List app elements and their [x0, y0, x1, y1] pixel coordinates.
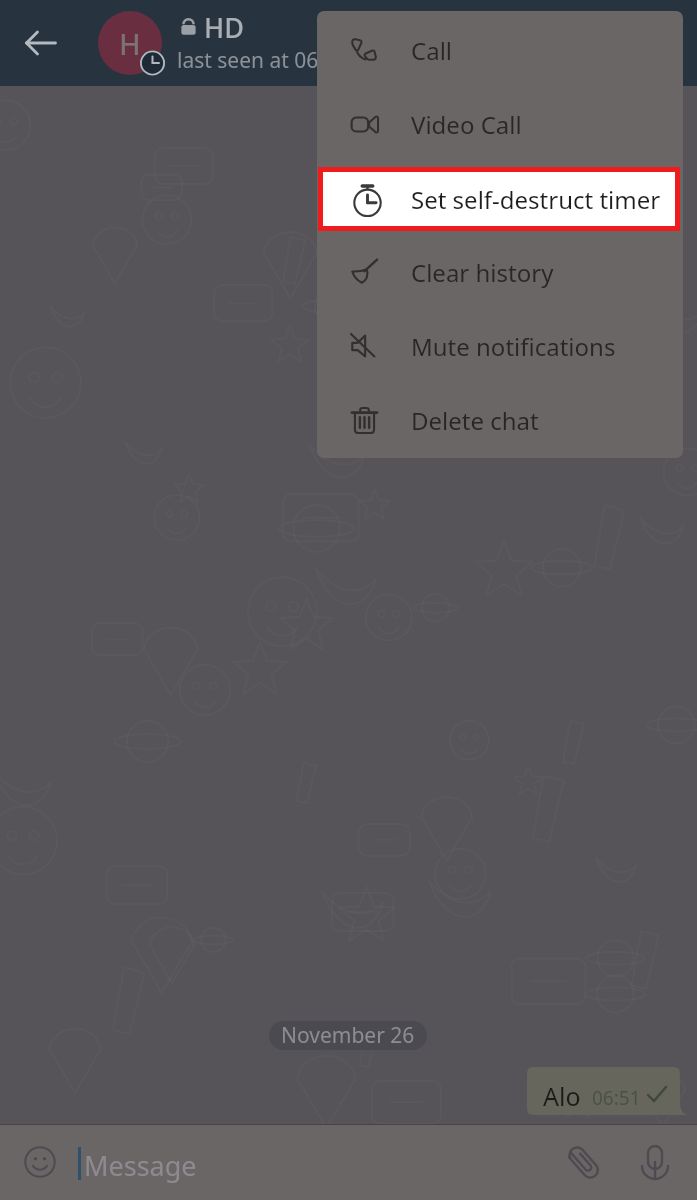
- button[interactable]: HD: [177, 9, 377, 75]
- button[interactable]: Record voice message: [631, 1138, 679, 1186]
- staticText: Message: [84, 1147, 197, 1184]
- staticText: Set self-destruct timer: [411, 182, 661, 215]
- button[interactable]: Set self-destruct timer: [317, 161, 683, 235]
- staticText: Clear history: [411, 256, 554, 289]
- button[interactable]: Video Call: [317, 87, 683, 161]
- staticText: Set self-destruct timer: [411, 183, 661, 216]
- staticText: Alo: [543, 1079, 581, 1113]
- staticText: last seen at 06:52: [177, 46, 348, 75]
- button[interactable]: Emoji: [16, 1138, 64, 1186]
- button[interactable]: November 26: [269, 1021, 427, 1050]
- staticText: HD: [204, 9, 244, 46]
- staticText: H: [119, 24, 141, 63]
- staticText: 06:51: [592, 1085, 641, 1111]
- button[interactable]: Message: [72, 1132, 542, 1192]
- staticText: Delete chat: [411, 404, 539, 437]
- staticText: Video Call: [411, 108, 522, 141]
- button[interactable]: Delete chat: [317, 383, 683, 457]
- staticText: Mute notifications: [411, 330, 616, 363]
- staticText: Call: [411, 34, 453, 67]
- button[interactable]: Back: [13, 15, 69, 71]
- button[interactable]: Call: [317, 13, 683, 87]
- button[interactable]: Attach file: [561, 1140, 609, 1188]
- button[interactable]: Set self-destruct timer: [323, 172, 675, 226]
- button[interactable]: Clear history: [317, 235, 683, 309]
- staticText: November 26: [281, 1021, 415, 1050]
- button[interactable]: Profile photo: [98, 11, 162, 75]
- button[interactable]: Mute notifications: [317, 309, 683, 383]
